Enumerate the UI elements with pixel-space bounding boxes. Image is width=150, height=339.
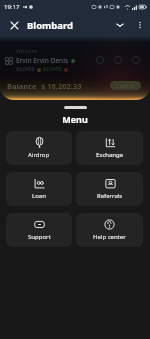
button[interactable]: Support bbox=[6, 213, 72, 247]
button[interactable]: Airdrop bbox=[6, 131, 72, 165]
staticText: 19:17 bbox=[4, 3, 20, 11]
staticText: Blombard bbox=[27, 19, 74, 32]
staticText: $0,0456 bbox=[16, 66, 35, 73]
button[interactable]: Close bbox=[3, 14, 25, 36]
staticText: Menu bbox=[0, 113, 150, 125]
staticText: $0,0456 bbox=[43, 66, 62, 73]
button[interactable]: Loan bbox=[6, 172, 72, 206]
staticText: Loan bbox=[32, 192, 46, 200]
button[interactable]: Cash in bbox=[110, 81, 141, 90]
staticText: $ 18,202.33 bbox=[41, 81, 82, 91]
staticText: Support bbox=[28, 233, 51, 241]
button[interactable]: Exchange bbox=[76, 131, 143, 165]
staticText: Cash in bbox=[116, 82, 136, 89]
button[interactable]: Expand bbox=[110, 15, 130, 35]
button[interactable]: More options bbox=[130, 15, 150, 35]
button[interactable]: Help center bbox=[76, 213, 143, 247]
staticText: Welcome bbox=[16, 48, 38, 55]
staticText: Help center bbox=[93, 233, 126, 241]
button[interactable]: Action bbox=[113, 55, 122, 64]
button[interactable]: Action bbox=[131, 55, 140, 64]
staticText: Ervin Ervin Denis bbox=[16, 56, 69, 65]
button[interactable]: Referrals bbox=[76, 172, 143, 206]
staticText: Airdrop bbox=[28, 151, 50, 159]
staticText: Exchange bbox=[96, 151, 124, 159]
staticText: Balance bbox=[7, 81, 37, 91]
button[interactable]: Action bbox=[95, 55, 104, 64]
staticText: Referrals bbox=[97, 192, 123, 200]
